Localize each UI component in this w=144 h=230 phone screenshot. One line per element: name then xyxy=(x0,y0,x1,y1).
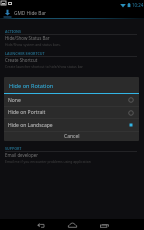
staticText: Create Shortcut xyxy=(5,57,38,63)
staticText: Hide on Rotation xyxy=(9,82,54,90)
button[interactable]: None xyxy=(4,94,139,106)
staticText: Email developer xyxy=(5,152,38,158)
staticText: Hide/Show Status Bar xyxy=(5,35,50,41)
staticText: 10:24 xyxy=(132,2,144,8)
button[interactable]: Home xyxy=(60,219,84,230)
staticText: None xyxy=(8,97,21,104)
button[interactable]: Email developer xyxy=(0,152,144,164)
button[interactable]: Back xyxy=(29,219,53,230)
staticText: SUPPORT xyxy=(5,146,22,151)
staticText: Hide on Landscape xyxy=(8,122,53,129)
button[interactable]: Hide on Portrait xyxy=(4,107,139,118)
button[interactable]: Recents xyxy=(92,219,116,230)
staticText: LAUNCHER SHORTCUT xyxy=(5,51,45,56)
staticText: Create launcher shortcut to hide/show st… xyxy=(5,64,84,69)
staticText: Email me if you encounter problems using… xyxy=(5,159,91,164)
button[interactable]: Cancel xyxy=(4,132,139,141)
button[interactable]: Hide/Show Status Bar xyxy=(0,35,144,47)
button[interactable]: Create Shortcut xyxy=(0,57,144,69)
staticText: Hide on Portrait xyxy=(8,109,46,116)
staticText: ACTIONS xyxy=(5,29,21,34)
button[interactable]: Hide on Landscape xyxy=(4,119,139,131)
staticText: GMD Hide Bar xyxy=(14,10,47,17)
staticText: Hide/Show system and status bars. xyxy=(5,42,61,47)
staticText: Cancel xyxy=(64,133,80,140)
